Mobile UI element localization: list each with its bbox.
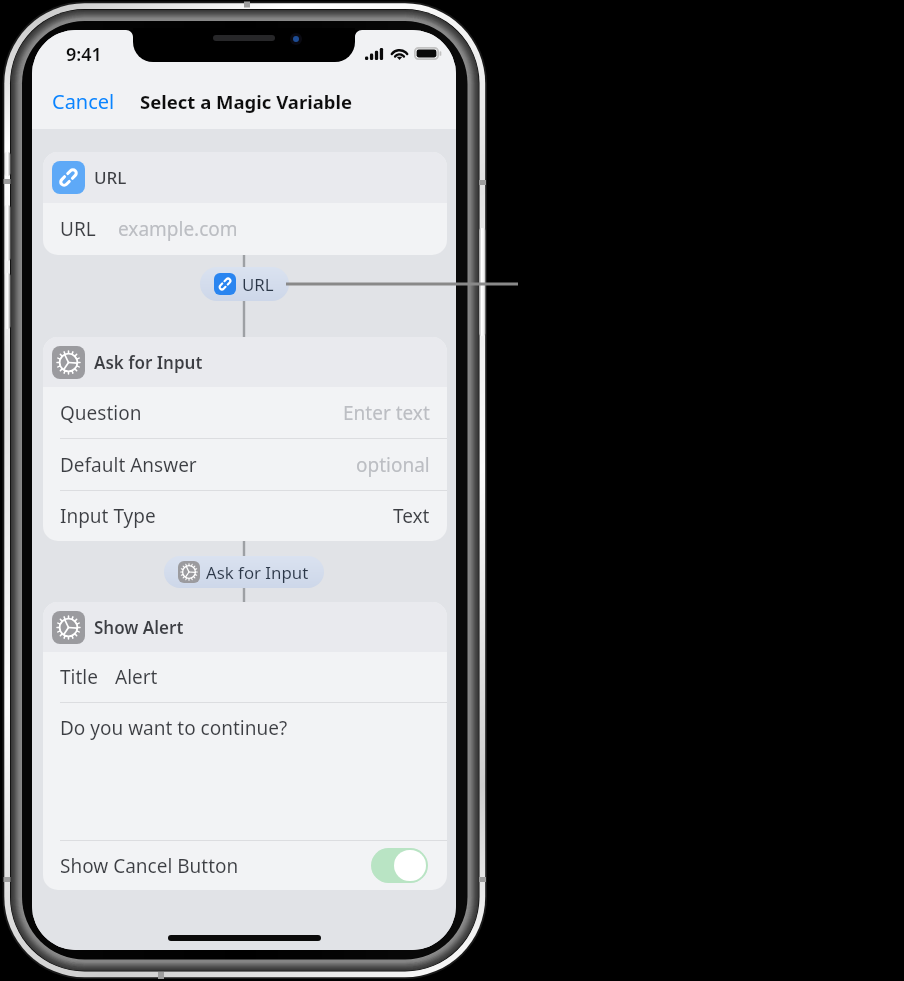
staticText: Question (60, 400, 142, 426)
staticText: example.com (118, 216, 238, 242)
staticText: Cancel (52, 88, 115, 115)
staticText: Do you want to continue? (60, 715, 288, 741)
staticText: optional (356, 452, 430, 478)
button[interactable]: Title (43, 652, 447, 702)
staticText: Show Alert (94, 616, 184, 639)
staticText: Default Answer (60, 452, 197, 478)
button[interactable]: Show Alert (43, 602, 447, 652)
button[interactable]: URL (200, 267, 289, 301)
staticText: Ask for Input (94, 351, 203, 374)
staticText: Show Cancel Button (60, 853, 239, 879)
staticText: Select a Magic Variable (140, 89, 353, 114)
button[interactable]: Default Answer (43, 439, 447, 490)
staticText: Alert (115, 664, 158, 690)
staticText: Text (393, 503, 430, 529)
button[interactable]: Ask for Input (164, 556, 324, 588)
button[interactable]: Ask for Input (43, 337, 447, 387)
button[interactable]: Question (43, 387, 447, 438)
staticText: 9:41 (66, 42, 102, 67)
button[interactable]: Do you want to continue? (43, 703, 447, 840)
staticText: URL (60, 216, 96, 242)
button[interactable]: Cancel (32, 80, 129, 123)
staticText: Enter text (343, 400, 430, 426)
staticText: Input Type (60, 503, 156, 529)
button[interactable]: URL (43, 152, 447, 203)
button[interactable]: Input Type (43, 491, 447, 541)
staticText: Title (60, 664, 98, 690)
button[interactable]: URL (43, 203, 447, 255)
staticText: URL (242, 273, 274, 296)
staticText: Ask for Input (206, 561, 309, 584)
button[interactable]: Show Cancel Button (43, 841, 447, 890)
staticText: URL (94, 166, 127, 189)
